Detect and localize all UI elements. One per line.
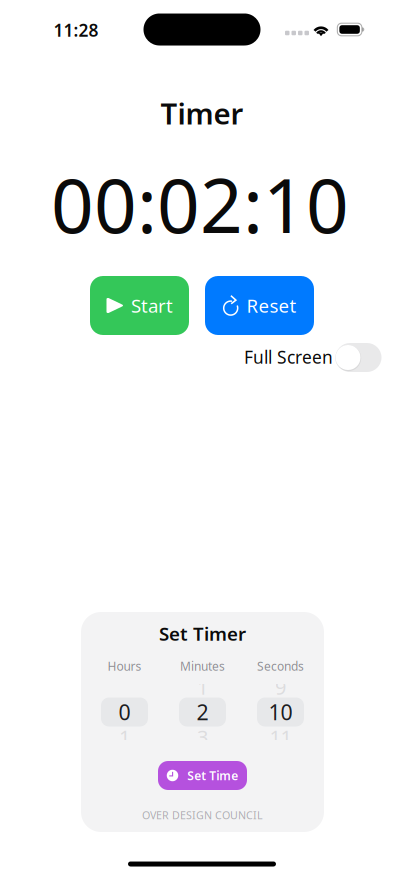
staticText: 1 [119,724,130,750]
staticText: 0 [118,698,130,726]
staticText: 2 [196,698,208,726]
staticText: Minutes [180,658,225,674]
staticText: 10 [268,698,292,726]
staticText: Seconds [257,658,304,674]
button[interactable]: Reset [205,276,314,335]
staticText: 00:02:10 [51,154,349,254]
staticText: Reset [246,293,296,318]
staticText: 11:28 [53,18,98,41]
staticText: Start [131,293,173,318]
staticText: 9 [275,674,286,700]
button[interactable]: Start [90,276,189,335]
staticText: Set Time [187,767,238,783]
staticText: Timer [160,93,243,132]
button[interactable]: Set Time [158,761,247,790]
staticText: 3 [197,724,208,750]
staticText: Full Screen [244,345,333,368]
staticText: Set Timer [159,621,246,646]
staticText: 11 [269,724,291,750]
staticText: Hours [107,658,141,674]
button[interactable]: Full Screen [335,343,381,372]
staticText: 1 [197,674,208,700]
staticText: OVER DESIGN COUNCIL [142,808,263,822]
